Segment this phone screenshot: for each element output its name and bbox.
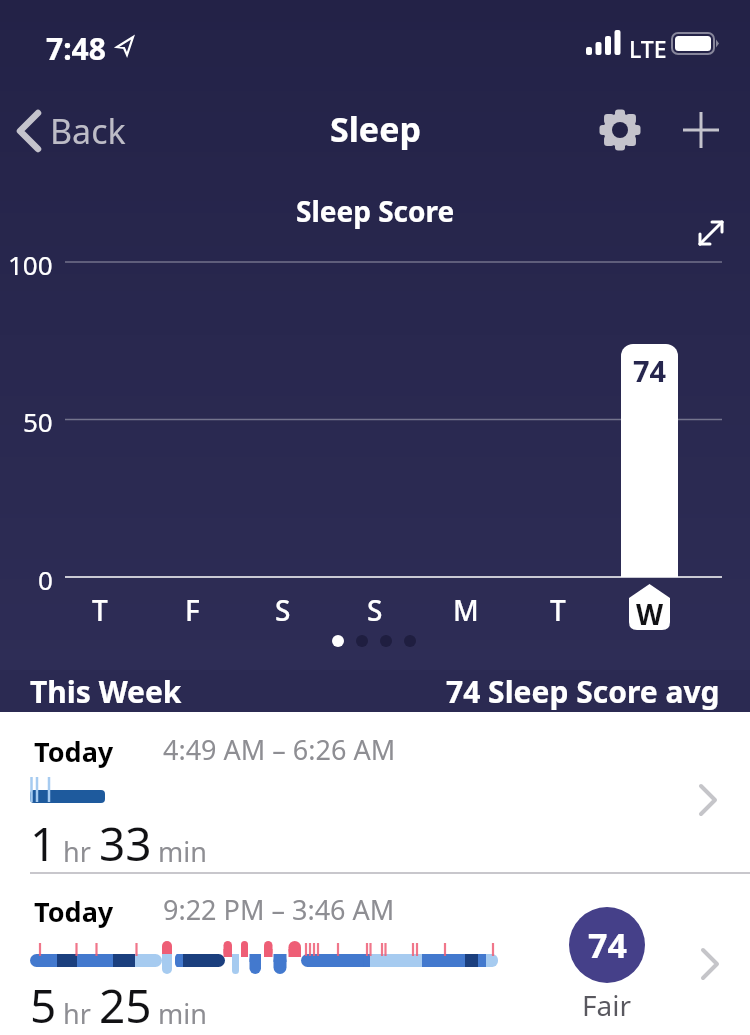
staticText: T — [92, 591, 108, 629]
staticText: 4:49 AM – 6:26 AM — [163, 731, 396, 768]
button[interactable]: Today — [0, 874, 750, 1035]
staticText: Today — [34, 733, 114, 770]
staticText: S — [367, 591, 383, 629]
staticText: 100 — [8, 247, 53, 282]
staticText: 7:48 — [46, 28, 106, 69]
button[interactable] — [596, 106, 644, 154]
staticText: 74 Sleep Score avg — [446, 671, 720, 712]
button[interactable] — [621, 344, 678, 577]
staticText: LTE — [629, 33, 667, 64]
staticText: This Week — [30, 671, 182, 712]
staticText: Back — [50, 108, 126, 154]
staticText: 0 — [38, 562, 53, 597]
staticText: F — [185, 591, 200, 629]
staticText: Today — [34, 893, 114, 930]
staticText: min — [158, 995, 207, 1032]
staticText: T — [550, 591, 566, 629]
staticText: 33 — [99, 812, 152, 875]
staticText: W — [636, 595, 664, 633]
staticText: Fair — [582, 986, 632, 1024]
staticText: 5 — [30, 974, 57, 1035]
staticText: S — [275, 591, 291, 629]
staticText: 25 — [99, 974, 152, 1035]
staticText: 74 — [588, 922, 627, 968]
button[interactable]: Back — [10, 104, 132, 158]
staticText: Sleep — [330, 106, 421, 152]
staticText: min — [158, 833, 207, 870]
staticText: M — [453, 591, 479, 629]
staticText: 74 — [633, 351, 667, 390]
button[interactable]: Today — [0, 712, 750, 873]
button[interactable] — [678, 106, 724, 152]
staticText: hr — [63, 995, 91, 1032]
staticText: 50 — [23, 404, 53, 439]
staticText: hr — [63, 833, 91, 870]
staticText: 1 — [30, 812, 57, 875]
staticText: Sleep Score — [296, 192, 455, 230]
staticText: 9:22 PM – 3:46 AM — [163, 891, 395, 928]
